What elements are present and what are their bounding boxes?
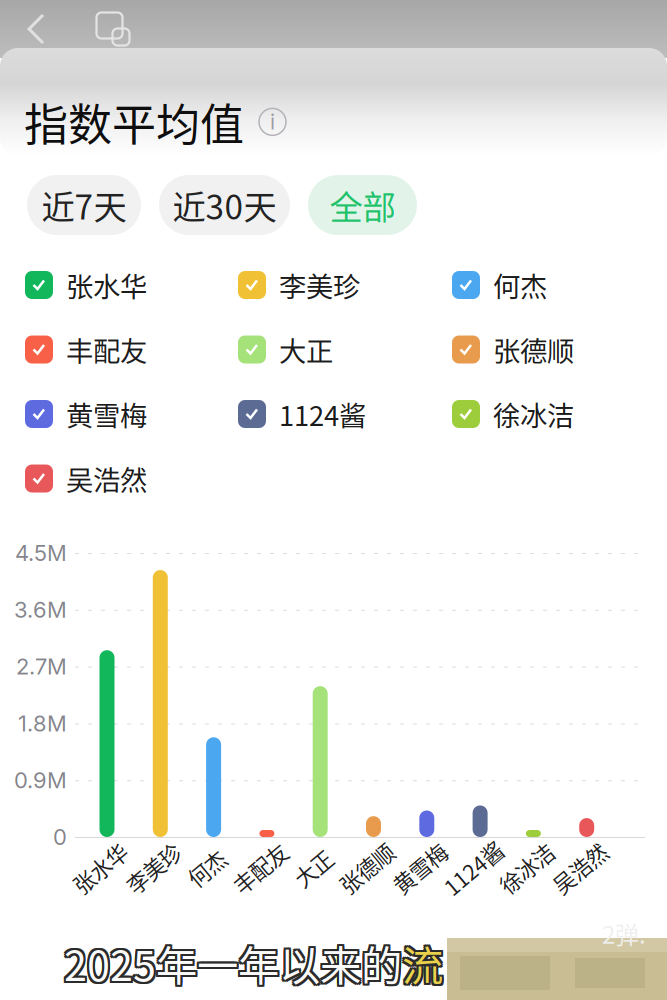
staticText: 流 <box>400 931 441 991</box>
staticText: 丰配友 <box>228 853 291 883</box>
staticText: 近7天 <box>41 181 126 229</box>
button[interactable]: 何杰 <box>452 269 642 301</box>
button[interactable]: Info <box>259 108 286 135</box>
staticText: 2025年一年以来的 <box>62 935 400 995</box>
button[interactable]: 全部 <box>308 175 417 235</box>
button[interactable]: 张水华 <box>25 269 238 301</box>
staticText: 2025年一年以来的 <box>64 933 402 993</box>
button[interactable]: 大正 <box>238 333 452 365</box>
staticText: 何杰 <box>493 265 547 305</box>
staticText: 流 <box>404 933 445 993</box>
staticText: 张水华 <box>68 853 131 883</box>
staticText: 吴浩然 <box>548 853 611 883</box>
staticText: 1124酱 <box>439 853 508 883</box>
staticText: 0.9M <box>14 767 67 793</box>
staticText: 流 <box>404 935 445 995</box>
staticText: 流 <box>400 933 441 993</box>
button[interactable]: 李美珍 <box>238 269 452 301</box>
staticText: 2025年一年以来的 <box>66 935 404 995</box>
button[interactable]: 近30天 <box>159 175 290 235</box>
staticText: 大正 <box>279 330 333 369</box>
button[interactable]: 丰配友 <box>25 333 238 365</box>
staticText: 全部 <box>329 181 395 229</box>
staticText: 徐冰洁 <box>495 853 558 883</box>
staticText: 大正 <box>292 853 334 883</box>
staticText: 流 <box>400 935 441 995</box>
button[interactable]: 黄雪梅 <box>25 398 238 430</box>
staticText: 流 <box>404 931 445 991</box>
staticText: 何杰 <box>186 853 228 883</box>
staticText: 张德顺 <box>335 853 398 883</box>
staticText: 2025年一年以来的 <box>62 931 400 991</box>
staticText: 1124酱 <box>279 394 366 434</box>
staticText: 2025年一年以来的 <box>64 935 402 995</box>
staticText: 黄雪梅 <box>388 853 451 883</box>
button[interactable]: Recent apps <box>87 0 139 58</box>
staticText: 流 <box>402 935 443 995</box>
staticText: 张水华 <box>66 265 147 305</box>
staticText: i <box>270 109 275 135</box>
staticText: 流 <box>402 931 443 991</box>
button[interactable]: 张德顺 <box>452 333 642 365</box>
staticText: 张德顺 <box>493 330 574 369</box>
staticText: 流 <box>402 933 443 993</box>
staticText: 2025年一年以来的 <box>66 931 404 991</box>
staticText: 吴浩然 <box>66 459 147 498</box>
staticText: 2025年一年以来的 <box>66 933 404 993</box>
button[interactable]: 吴浩然 <box>25 462 238 494</box>
button[interactable]: 1124酱 <box>238 398 452 430</box>
button[interactable]: Back <box>12 0 60 58</box>
staticText: 徐冰洁 <box>493 394 574 434</box>
staticText: 近30天 <box>172 181 276 229</box>
staticText: 2025年一年以来的 <box>62 933 400 993</box>
staticText: 2弹. <box>602 916 646 951</box>
staticText: 4.5M <box>15 540 67 566</box>
button[interactable]: 徐冰洁 <box>452 398 642 430</box>
staticText: 1.8M <box>18 710 67 737</box>
staticText: 李美珍 <box>279 265 360 305</box>
staticText: 2025年一年以来的 <box>64 931 402 991</box>
staticText: 黄雪梅 <box>66 394 147 434</box>
staticText: 3.6M <box>14 596 67 623</box>
staticText: 指数平均值 <box>24 90 244 154</box>
staticText: 丰配友 <box>66 330 147 369</box>
staticText: 2.7M <box>16 653 67 680</box>
staticText: 李美珍 <box>122 853 185 883</box>
button[interactable]: 近7天 <box>27 175 141 235</box>
staticText: 0 <box>53 824 67 850</box>
